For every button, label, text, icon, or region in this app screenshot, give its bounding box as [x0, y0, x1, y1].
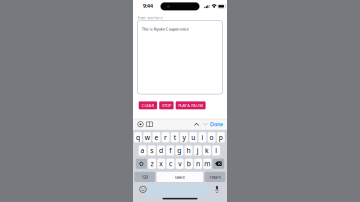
staticText: m: [204, 159, 210, 168]
staticText: u: [191, 133, 195, 142]
staticText: i: [201, 133, 203, 142]
button[interactable]: return: [204, 172, 225, 182]
staticText: t: [174, 133, 176, 142]
button[interactable]: k: [203, 145, 211, 156]
button[interactable]: a: [139, 145, 146, 156]
staticText: j: [197, 146, 199, 155]
staticText: 123: [142, 174, 148, 179]
staticText: v: [178, 159, 181, 168]
button[interactable]: Delete: [212, 159, 224, 169]
staticText: q: [136, 133, 140, 142]
button[interactable]: y: [180, 132, 188, 142]
button[interactable]: Dictionary: [145, 119, 154, 130]
staticText: x: [159, 159, 163, 168]
button[interactable]: CLEAR: [139, 101, 157, 109]
staticText: y: [182, 133, 185, 142]
button[interactable]: z: [148, 159, 156, 169]
button[interactable]: j: [194, 145, 202, 156]
staticText: o: [210, 133, 214, 142]
button[interactable]: u: [189, 132, 197, 142]
staticText: c: [169, 159, 172, 168]
staticText: b: [187, 159, 191, 168]
staticText: f: [169, 146, 171, 155]
button[interactable]: v: [176, 159, 184, 169]
button[interactable]: e: [152, 132, 160, 142]
staticText: w: [145, 133, 150, 142]
staticText: g: [177, 146, 181, 155]
button[interactable]: Previous field: [192, 119, 201, 130]
staticText: STOP: [162, 103, 171, 108]
button[interactable]: c: [166, 159, 174, 169]
button[interactable]: space: [156, 172, 203, 182]
button[interactable]: Shift: [136, 159, 147, 169]
button[interactable]: x: [157, 159, 165, 169]
button[interactable]: o: [208, 132, 215, 142]
button[interactable]: f: [166, 145, 174, 156]
staticText: p: [219, 133, 223, 142]
button[interactable]: Autofill: [136, 119, 145, 130]
staticText: e: [154, 133, 158, 142]
staticText: h: [187, 146, 191, 155]
staticText: a: [141, 146, 145, 155]
staticText: z: [150, 159, 153, 168]
staticText: r: [164, 133, 167, 142]
staticText: n: [196, 159, 200, 168]
button[interactable]: Emoji keyboard: [138, 185, 147, 194]
button[interactable]: STOP: [159, 101, 174, 109]
staticText: space: [175, 174, 185, 179]
button[interactable]: h: [185, 145, 192, 156]
button[interactable]: p: [217, 132, 225, 142]
staticText: CLEAR: [141, 103, 154, 108]
staticText: k: [205, 146, 209, 155]
button[interactable]: s: [148, 145, 156, 156]
button[interactable]: d: [157, 145, 165, 156]
button[interactable]: q: [134, 132, 142, 142]
button[interactable]: g: [175, 145, 183, 156]
staticText: Done: [210, 121, 223, 128]
staticText: Enter text here: [137, 15, 162, 20]
button[interactable]: 123: [134, 172, 155, 182]
staticText: This is Kiyoko Coupon voice: [142, 26, 189, 32]
button[interactable]: t: [171, 132, 179, 142]
button[interactable]: Dictation: [212, 185, 221, 194]
button[interactable]: m: [203, 159, 211, 169]
staticText: PLAY & PAUSE: [178, 103, 203, 108]
button[interactable]: i: [198, 132, 206, 142]
button[interactable]: PLAY & PAUSE: [176, 101, 206, 109]
button[interactable]: Next field: [201, 119, 210, 130]
staticText: 9:44: [143, 2, 153, 9]
button[interactable]: w: [143, 132, 151, 142]
button[interactable]: b: [185, 159, 193, 169]
button[interactable]: l: [212, 145, 220, 156]
button[interactable]: r: [162, 132, 169, 142]
staticText: d: [159, 146, 163, 155]
button[interactable]: n: [194, 159, 202, 169]
staticText: s: [150, 146, 153, 155]
staticText: return: [209, 174, 220, 179]
button[interactable]: Done: [210, 119, 223, 130]
staticText: l: [215, 146, 217, 155]
